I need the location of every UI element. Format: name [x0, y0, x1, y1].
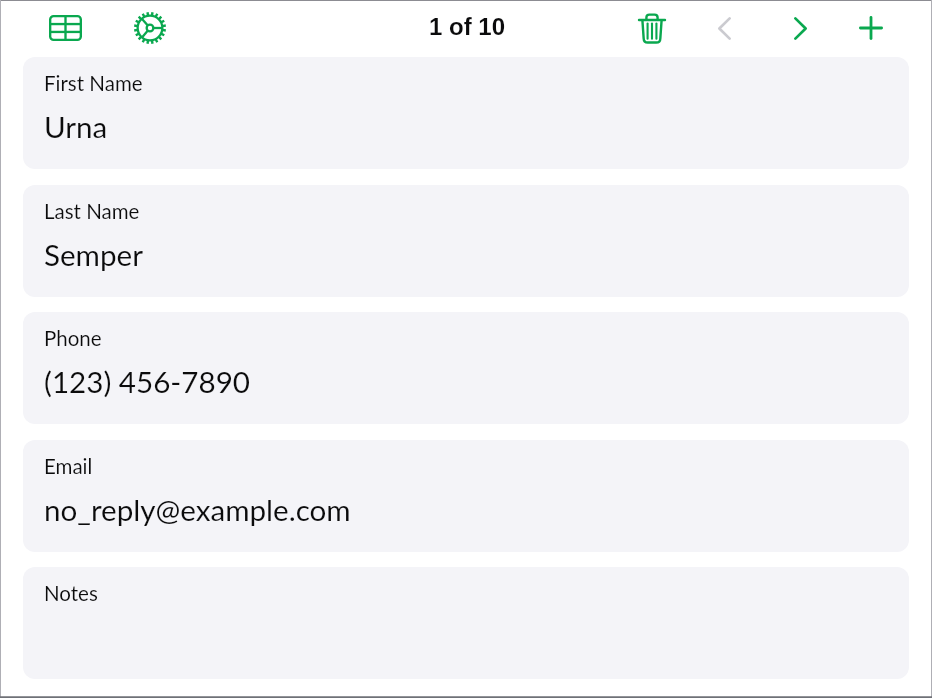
staticText: First Name [44, 71, 143, 96]
button[interactable]: Settings [127, 5, 173, 51]
staticText: Phone [44, 326, 102, 351]
staticText: Last Name [44, 199, 140, 224]
button[interactable]: Notes [23, 567, 909, 679]
staticText: no_reply@example.com [44, 492, 351, 528]
staticText: Notes [44, 581, 98, 606]
button[interactable]: Layouts [42, 5, 88, 51]
button[interactable]: Next record [777, 5, 823, 51]
button[interactable]: Previous record [701, 5, 747, 51]
button[interactable]: Last Name [23, 185, 909, 297]
button[interactable]: Email [23, 440, 909, 552]
staticText: Semper [44, 237, 143, 273]
staticText: (123) 456-7890 [44, 364, 251, 400]
button[interactable]: Delete record [629, 5, 675, 51]
button[interactable]: New record [848, 5, 894, 51]
staticText: 1 of 10 [429, 13, 506, 40]
staticText: Email [44, 454, 93, 479]
staticText: Urna [44, 109, 108, 145]
button[interactable]: First Name [23, 57, 909, 169]
button[interactable]: Phone [23, 312, 909, 424]
